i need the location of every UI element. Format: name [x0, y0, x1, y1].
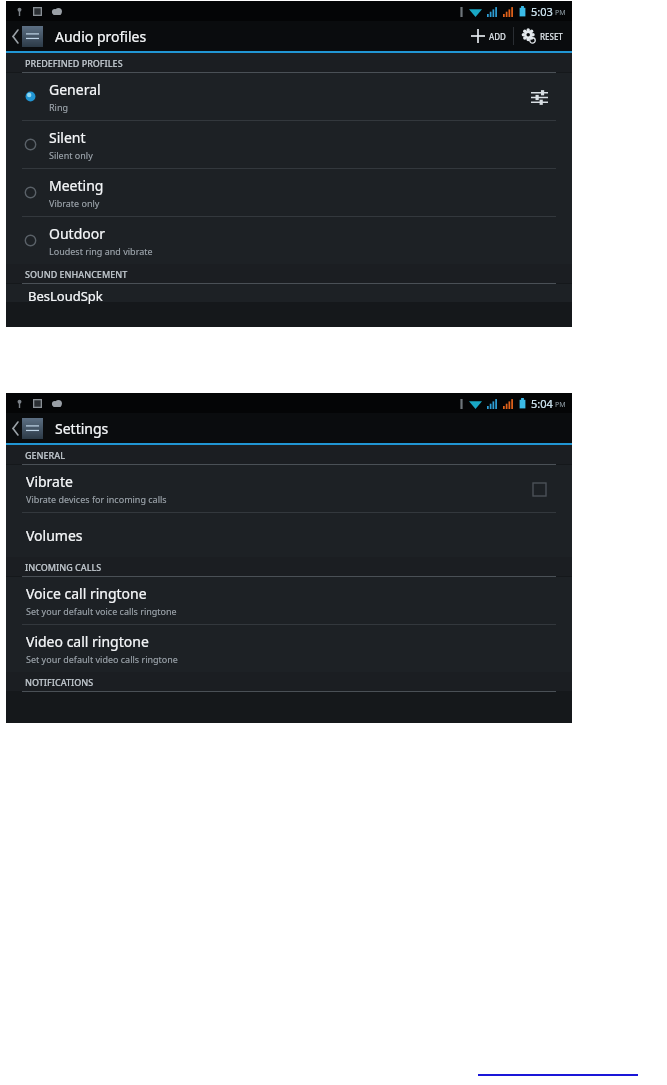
button[interactable]: Navigate up	[6, 26, 47, 47]
staticText: 5:03	[531, 4, 553, 19]
staticText: BesLoudSpk	[28, 287, 103, 305]
staticText: Vibrate only	[49, 197, 100, 209]
button[interactable]: Silent	[6, 121, 572, 168]
staticText: NOTIFICATIONS	[25, 676, 94, 688]
staticText: Silent only	[49, 149, 93, 161]
staticText: ADD	[489, 31, 506, 42]
staticText: Loudest ring and vibrate	[49, 245, 153, 257]
button[interactable]: Navigate up	[6, 418, 47, 439]
staticText: Vibrate devices for incoming calls	[26, 493, 167, 505]
staticText: PREDEFINED PROFILES	[25, 57, 123, 69]
button[interactable]: Equalizer settings	[524, 82, 554, 112]
staticText: General	[49, 80, 101, 99]
staticText: PM	[555, 8, 566, 18]
button[interactable]: RESET	[514, 21, 572, 51]
button[interactable]: ADD	[463, 21, 513, 51]
staticText: Silent	[49, 128, 86, 147]
button[interactable]: General	[6, 73, 572, 120]
staticText: Video call ringtone	[26, 632, 149, 651]
staticText: Set your default video calls ringtone	[26, 653, 178, 665]
staticText: Meeting	[49, 176, 104, 195]
staticText: Outdoor	[49, 224, 105, 243]
staticText: Ring	[49, 101, 69, 113]
button[interactable]: Vibrate toggle	[526, 476, 552, 502]
staticText: SOUND ENHANCEMENT	[25, 268, 128, 280]
staticText: Settings	[55, 419, 109, 438]
button[interactable]: Volumes	[6, 513, 572, 557]
staticText: RESET	[540, 31, 563, 42]
button[interactable]: Meeting	[6, 169, 572, 216]
staticText: Set your default voice calls ringtone	[26, 605, 177, 617]
staticText: 5:04	[531, 396, 553, 411]
button[interactable]: Vibrate	[6, 465, 572, 512]
staticText: Volumes	[26, 526, 83, 545]
staticText: Audio profiles	[55, 27, 147, 46]
staticText: PM	[555, 400, 566, 410]
button[interactable]: Video call ringtone	[6, 625, 572, 672]
button[interactable]: Voice call ringtone	[6, 577, 572, 624]
staticText: GENERAL	[25, 449, 65, 461]
staticText: INCOMING CALLS	[25, 561, 102, 573]
staticText: Vibrate	[26, 472, 73, 491]
button[interactable]: Outdoor	[6, 217, 572, 264]
staticText: Voice call ringtone	[26, 584, 147, 603]
